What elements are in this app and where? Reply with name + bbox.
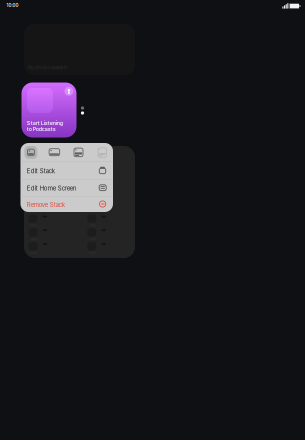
button[interactable]: Podcasts widget, Start Listening to Podc…	[21, 82, 76, 137]
staticText: Edit Home Screen	[27, 185, 77, 192]
staticText: 10:00	[6, 3, 18, 8]
staticText: Remove Stack	[27, 201, 65, 208]
button[interactable]: Edit Home Screen	[20, 179, 113, 196]
button[interactable]: Edit Stack	[20, 161, 113, 179]
button[interactable]: Remove Stack	[20, 196, 113, 212]
staticText: to Podcasts	[27, 126, 56, 132]
staticText: Start Listening	[27, 120, 63, 126]
button[interactable]: Extra large widget size	[90, 143, 113, 161]
staticText: Edit Stack	[27, 167, 55, 175]
button[interactable]: Small widget size	[20, 143, 44, 161]
staticText: No photos available	[28, 65, 68, 70]
button[interactable]: Large widget size	[67, 143, 90, 161]
button[interactable]: Medium widget size	[44, 143, 67, 161]
